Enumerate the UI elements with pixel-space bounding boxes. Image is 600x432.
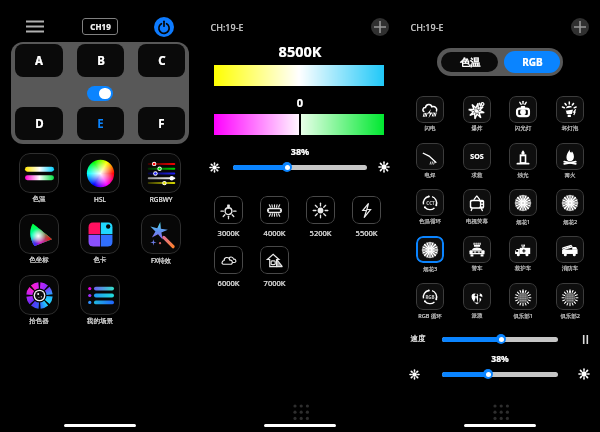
staticText: SOS — [470, 152, 484, 162]
button[interactable] — [463, 236, 491, 263]
button[interactable]: D — [15, 107, 63, 140]
staticText: D — [35, 116, 44, 132]
staticText: 拾色器 — [11, 317, 67, 325]
staticText: 派溦 — [454, 312, 500, 319]
button[interactable]: B — [77, 44, 124, 77]
button[interactable] — [352, 196, 381, 224]
staticText: 4000K — [252, 228, 297, 238]
button[interactable]: F — [138, 107, 185, 140]
staticText: 篝火 — [547, 172, 593, 179]
button[interactable] — [442, 337, 558, 342]
button[interactable]: CCT — [416, 189, 444, 216]
button[interactable] — [416, 143, 444, 170]
button[interactable] — [556, 283, 584, 310]
button[interactable]: CH19 — [82, 18, 118, 35]
staticText: 色卡 — [72, 256, 128, 264]
staticText: 电焊 — [407, 172, 453, 179]
staticText: 烛光 — [500, 172, 546, 179]
button[interactable] — [80, 275, 120, 315]
staticText: C — [158, 53, 166, 69]
button[interactable] — [306, 196, 335, 224]
button[interactable] — [19, 153, 59, 193]
button[interactable]: E — [77, 107, 124, 140]
button[interactable] — [509, 236, 537, 263]
staticText: 6000K — [206, 278, 251, 288]
button[interactable] — [463, 96, 491, 123]
staticText: CH:19-E — [210, 21, 244, 33]
staticText: 求救 — [454, 172, 500, 179]
button[interactable] — [260, 246, 289, 274]
button[interactable] — [442, 372, 558, 377]
button[interactable]: SOS — [463, 143, 491, 170]
staticText: 警车 — [454, 265, 500, 272]
button[interactable]: Pause — [581, 335, 590, 344]
staticText: 色温 — [460, 56, 480, 69]
staticText: 烟花2 — [547, 218, 593, 226]
staticText: 烟花1 — [500, 218, 546, 226]
staticText: 5200K — [298, 228, 343, 238]
button[interactable] — [214, 246, 243, 274]
button[interactable] — [509, 96, 537, 123]
button[interactable] — [233, 165, 367, 170]
staticText: 7000K — [252, 278, 297, 288]
button[interactable] — [80, 214, 120, 254]
button[interactable]: Add — [571, 18, 589, 36]
button[interactable] — [463, 189, 491, 216]
staticText: CH:19-E — [410, 21, 444, 33]
staticText: 我的场景 — [72, 317, 128, 325]
button[interactable]: RGB — [504, 51, 560, 73]
button[interactable] — [416, 96, 444, 123]
button[interactable] — [509, 283, 537, 310]
button[interactable] — [214, 114, 384, 135]
button[interactable] — [509, 189, 537, 216]
button[interactable] — [80, 153, 120, 193]
staticText: 0 — [200, 95, 400, 110]
button[interactable]: 色温 — [441, 52, 498, 72]
staticText: CCT — [426, 200, 435, 206]
button[interactable] — [556, 143, 584, 170]
button[interactable] — [556, 189, 584, 216]
button[interactable]: Power — [154, 17, 174, 37]
staticText: 速度 — [403, 334, 433, 343]
staticText: CH19 — [90, 21, 111, 32]
staticText: 俱乐部2 — [547, 312, 593, 320]
staticText: 38% — [400, 353, 600, 365]
button[interactable] — [214, 65, 384, 86]
staticText: 色温循环 — [407, 218, 453, 225]
button[interactable] — [260, 196, 289, 224]
staticText: HSL — [72, 195, 128, 204]
staticText: RGBWY — [133, 195, 189, 204]
button[interactable]: A — [15, 44, 63, 77]
button[interactable] — [556, 236, 584, 263]
staticText: 3000K — [206, 228, 251, 238]
button[interactable] — [19, 275, 59, 315]
button[interactable]: Menu — [26, 20, 44, 33]
staticText: 坏灯泡 — [547, 125, 593, 132]
staticText: 38% — [200, 145, 400, 157]
button[interactable] — [19, 214, 59, 254]
staticText: B — [97, 53, 105, 69]
button[interactable] — [463, 283, 491, 310]
staticText: RGB — [522, 55, 543, 69]
staticText: 色温 — [11, 195, 67, 203]
staticText: E — [97, 116, 104, 132]
button[interactable]: Add — [371, 18, 389, 36]
button[interactable] — [141, 214, 181, 254]
button[interactable]: C — [138, 44, 185, 77]
button[interactable] — [141, 153, 181, 193]
button[interactable] — [509, 143, 537, 170]
staticText: 救护车 — [500, 265, 546, 272]
button[interactable] — [214, 196, 243, 224]
staticText: 5500K — [344, 228, 389, 238]
button[interactable]: RGB — [416, 283, 444, 310]
button[interactable]: Link toggle — [87, 86, 113, 101]
staticText: FX特效 — [133, 256, 189, 265]
button[interactable] — [556, 96, 584, 123]
staticText: 俱乐部1 — [500, 312, 546, 320]
staticText: 闪光灯 — [500, 125, 546, 132]
staticText: RGB 循环 — [407, 312, 453, 320]
staticText: RGB — [425, 294, 435, 300]
staticText: 8500K — [200, 41, 400, 61]
button[interactable] — [416, 236, 444, 263]
staticText: 消防车 — [547, 265, 593, 272]
